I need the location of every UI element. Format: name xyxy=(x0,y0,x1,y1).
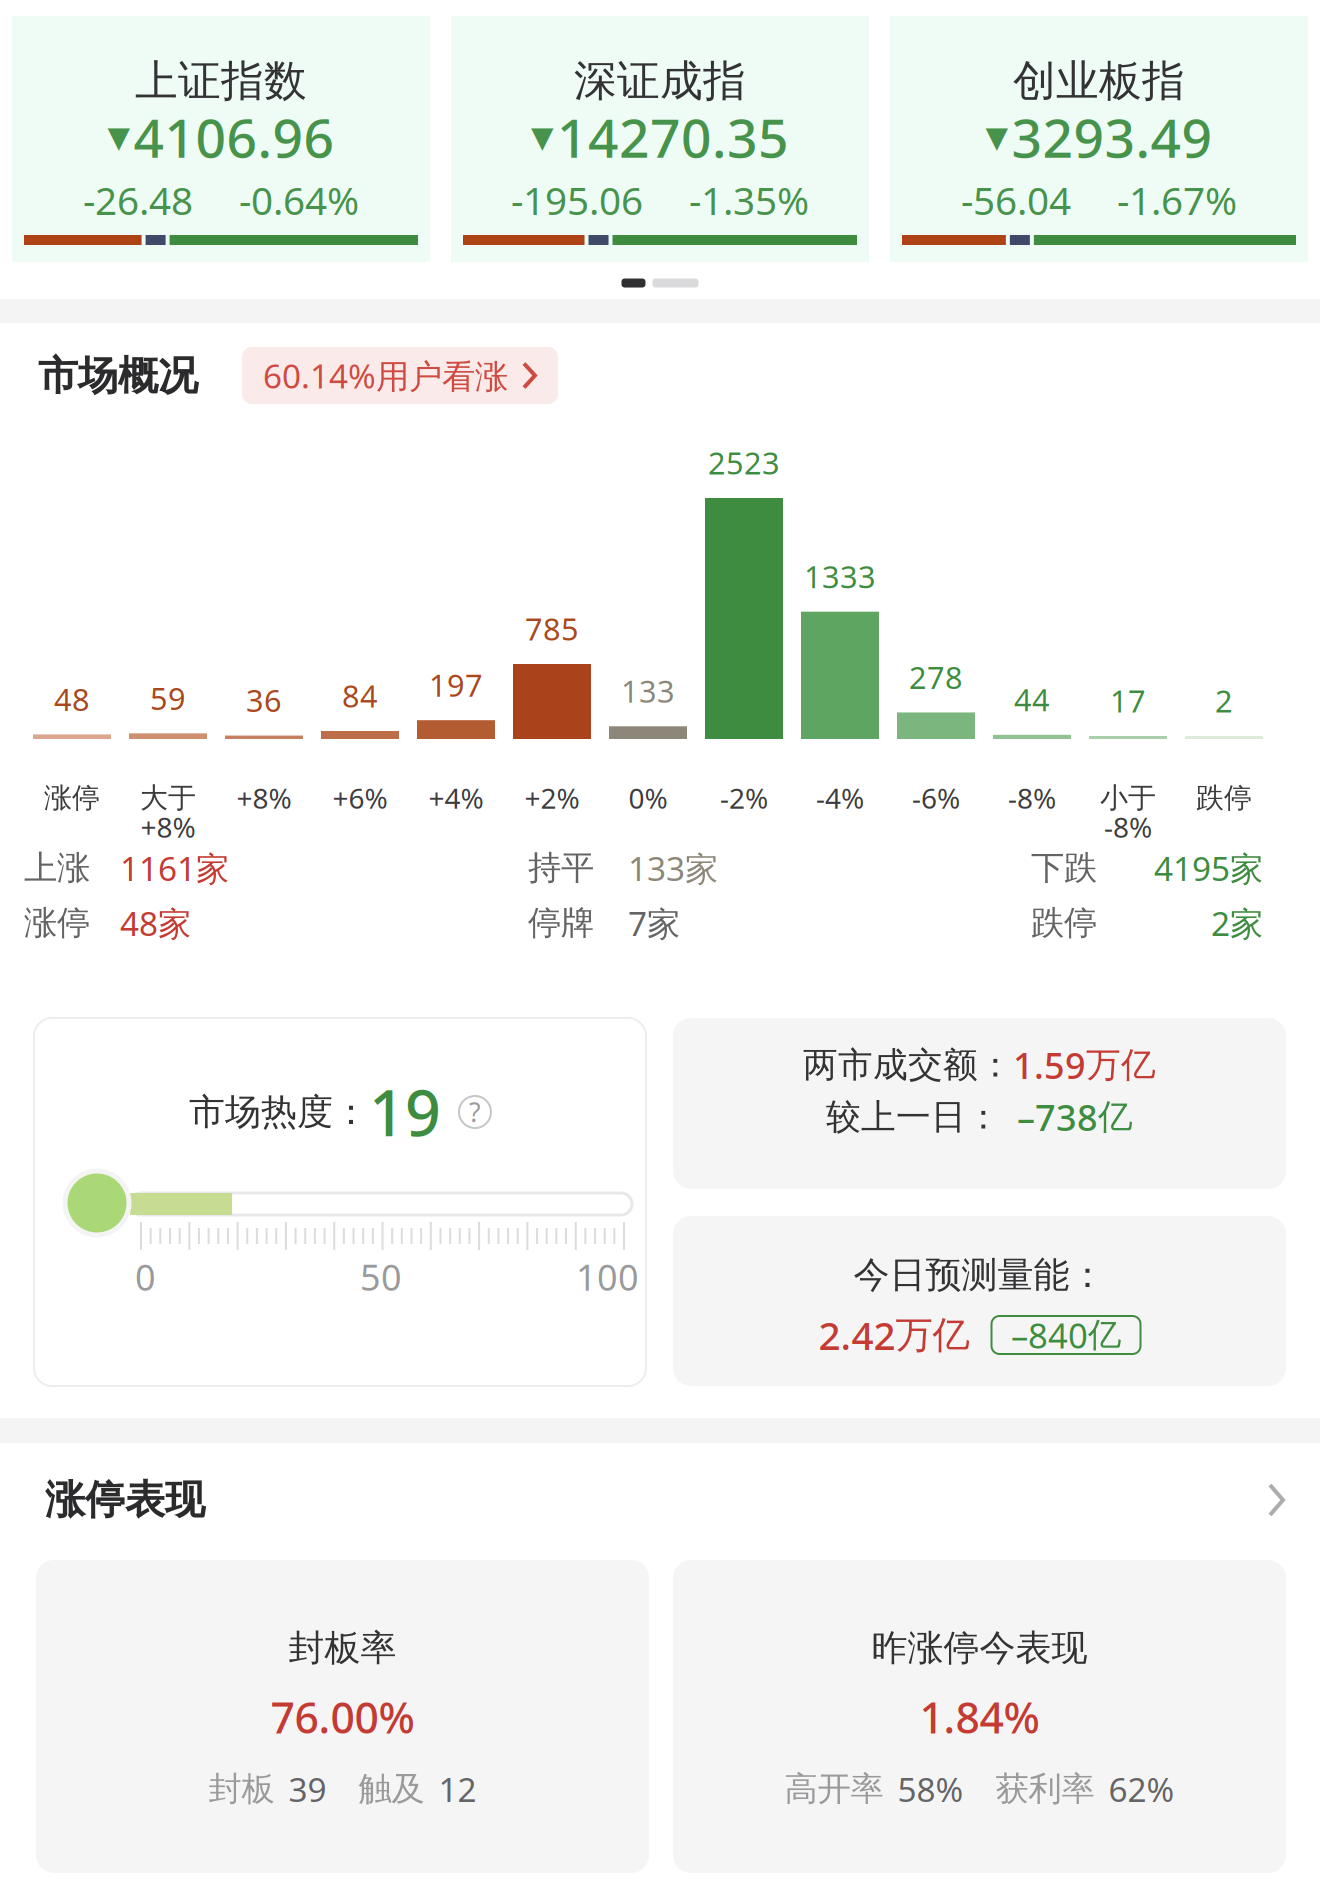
staticText: 76.00% xyxy=(270,1689,414,1745)
staticText: +6% xyxy=(332,779,387,817)
button[interactable]: 上证指数 xyxy=(12,16,430,262)
staticText: 785 xyxy=(525,608,579,649)
staticText: +8% xyxy=(236,779,291,817)
staticText: 1333 xyxy=(804,556,876,597)
staticText: 58% xyxy=(897,1767,963,1811)
staticText: 59 xyxy=(150,678,186,718)
staticText: 1161家 xyxy=(120,846,229,890)
staticText: -6% xyxy=(912,779,960,817)
staticText: 44 xyxy=(1014,679,1050,720)
staticText: 触及 xyxy=(358,1768,424,1809)
staticText: -8% xyxy=(1104,808,1152,846)
staticText: 高开率 xyxy=(784,1768,883,1809)
staticText: 上涨 xyxy=(24,847,90,888)
staticText: –840 xyxy=(1011,1312,1088,1358)
staticText: 小于 xyxy=(1100,781,1156,815)
staticText: 封板率 xyxy=(288,1626,396,1670)
staticText: 84 xyxy=(342,675,378,716)
staticText: -2% xyxy=(720,779,768,817)
staticText: 278 xyxy=(909,657,963,697)
staticText: 下跌 xyxy=(1031,847,1097,888)
staticText: ▼ xyxy=(531,120,554,154)
staticText: 14270.35 xyxy=(557,102,789,172)
staticText: 获利率 xyxy=(995,1768,1094,1809)
staticText: 涨停表现 xyxy=(45,1475,205,1524)
staticText: 60.14%用户看涨 xyxy=(263,353,508,398)
staticText: -4% xyxy=(816,779,864,817)
staticText: 停牌 xyxy=(528,902,594,943)
staticText: ? xyxy=(469,1094,481,1130)
staticText: 2.42 xyxy=(818,1309,895,1361)
staticText: +2% xyxy=(524,779,579,817)
button[interactable]: 深证成指 xyxy=(451,16,869,262)
staticText: -195.06 xyxy=(511,174,643,226)
staticText: 133家 xyxy=(628,846,718,890)
staticText: 7家 xyxy=(628,901,680,945)
button[interactable]: 创业板指 xyxy=(890,16,1308,262)
staticText: 48 xyxy=(54,679,90,719)
staticText: 1.59 xyxy=(1013,1041,1086,1089)
staticText: 19 xyxy=(369,1070,441,1154)
staticText: 大于 xyxy=(140,781,196,815)
staticText: ▼ xyxy=(985,120,1008,154)
staticText: 亿 xyxy=(1098,1096,1133,1138)
staticText: 市场热度： xyxy=(189,1090,369,1134)
staticText: 深证成指 xyxy=(574,55,746,107)
staticText: –738 xyxy=(1017,1093,1098,1141)
staticText: 12 xyxy=(438,1767,476,1811)
staticText: 1.84% xyxy=(919,1689,1039,1745)
staticText: 39 xyxy=(288,1767,326,1811)
staticText: 2家 xyxy=(1211,901,1263,945)
staticText: 跌停 xyxy=(1031,902,1097,943)
staticText: -26.48 xyxy=(83,174,193,226)
staticText: +8% xyxy=(140,808,195,846)
staticText: -56.04 xyxy=(961,174,1071,226)
staticText: 两市成交额： xyxy=(803,1044,1013,1086)
button[interactable]: 昨涨停今表现 xyxy=(673,1560,1286,1873)
button[interactable]: 涨停表现 xyxy=(45,1468,1285,1532)
staticText: 封板 xyxy=(208,1768,274,1809)
staticText: 48家 xyxy=(120,901,191,945)
staticText: -8% xyxy=(1008,779,1056,817)
staticText: 今日预测量能： xyxy=(853,1253,1105,1297)
staticText: 100 xyxy=(576,1253,639,1301)
staticText: 36 xyxy=(246,680,282,720)
staticText: -1.67% xyxy=(1117,174,1237,226)
staticText: 市场概况 xyxy=(38,351,198,400)
staticText: 万亿 xyxy=(1086,1044,1156,1086)
staticText: 2 xyxy=(1215,680,1233,721)
staticText: 50 xyxy=(360,1253,402,1301)
staticText: 2523 xyxy=(708,442,780,483)
staticText: 较上一日： xyxy=(826,1096,1001,1138)
staticText: 4106.96 xyxy=(133,102,334,172)
button[interactable]: 封板率 xyxy=(36,1560,649,1873)
staticText: 跌停 xyxy=(1196,781,1252,815)
staticText: 涨停 xyxy=(24,902,90,943)
staticText: -0.64% xyxy=(239,174,359,226)
staticText: 62% xyxy=(1108,1767,1174,1811)
staticText: 昨涨停今表现 xyxy=(871,1626,1087,1670)
staticText: 0 xyxy=(135,1253,156,1301)
staticText: +4% xyxy=(428,779,483,817)
staticText: 17 xyxy=(1110,680,1146,721)
staticText: 万亿 xyxy=(895,1312,969,1358)
staticText: 上证指数 xyxy=(135,55,307,107)
staticText: 亿 xyxy=(1088,1314,1121,1355)
staticText: 0% xyxy=(628,779,667,817)
staticText: 持平 xyxy=(528,847,594,888)
staticText: 创业板指 xyxy=(1013,55,1185,107)
staticText: 4195家 xyxy=(1154,846,1263,890)
staticText: -1.35% xyxy=(689,174,809,226)
staticText: 133 xyxy=(621,671,675,711)
staticText: 涨停 xyxy=(44,781,100,815)
staticText: 197 xyxy=(429,664,483,705)
staticText: ▼ xyxy=(107,120,130,154)
staticText: 3293.49 xyxy=(1011,102,1212,172)
button[interactable]: 60.14%用户看涨 xyxy=(242,347,558,404)
